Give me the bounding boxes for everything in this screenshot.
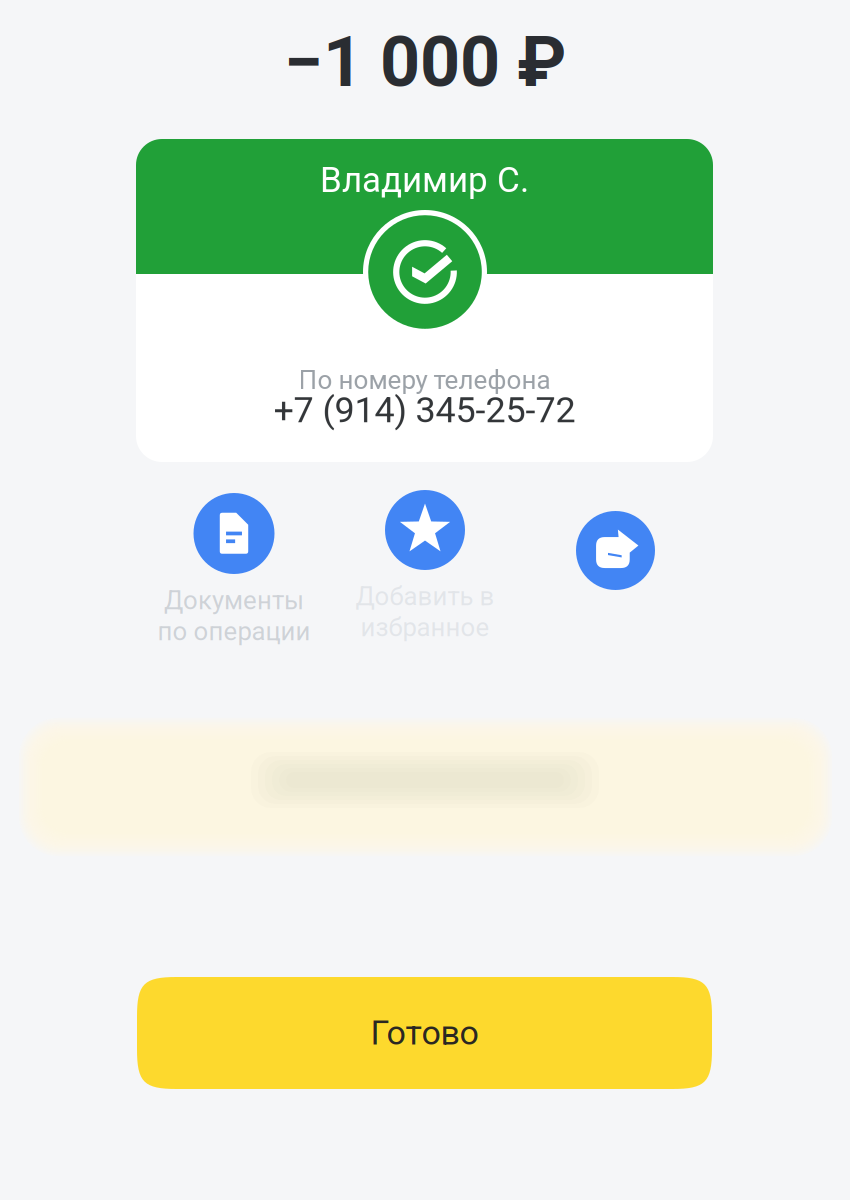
staticText: Готово	[370, 1013, 478, 1053]
button[interactable]: Готово	[137, 977, 712, 1089]
staticText: −1 000 ₽	[284, 21, 566, 103]
staticText: Добавить в	[355, 581, 494, 612]
staticText: По номеру телефона	[298, 365, 550, 395]
button[interactable]: Добавить в	[317, 490, 533, 643]
staticText: +7 (914) 345-25-72	[273, 389, 575, 431]
staticText: Владимир С.	[320, 159, 529, 200]
button[interactable]: Поделиться	[576, 511, 655, 590]
staticText: Документы	[164, 585, 304, 616]
staticText: избранное	[360, 612, 489, 643]
button[interactable]: Документы	[126, 493, 342, 647]
staticText: по операции	[157, 616, 310, 647]
